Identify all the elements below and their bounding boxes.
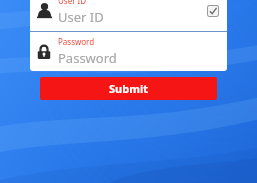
other: User: [36, 2, 53, 19]
button[interactable]: Password: [30, 32, 227, 71]
button[interactable]: Submit: [40, 77, 217, 100]
other: Password: [36, 44, 52, 60]
staticText: Submit: [109, 81, 148, 96]
staticText: User ID: [58, 8, 104, 26]
staticText: Password: [58, 49, 117, 67]
staticText: Password: [58, 36, 95, 47]
staticText: User ID: [58, 0, 87, 6]
button[interactable]: Remember me: [207, 5, 219, 17]
button[interactable]: User: [30, 0, 227, 31]
